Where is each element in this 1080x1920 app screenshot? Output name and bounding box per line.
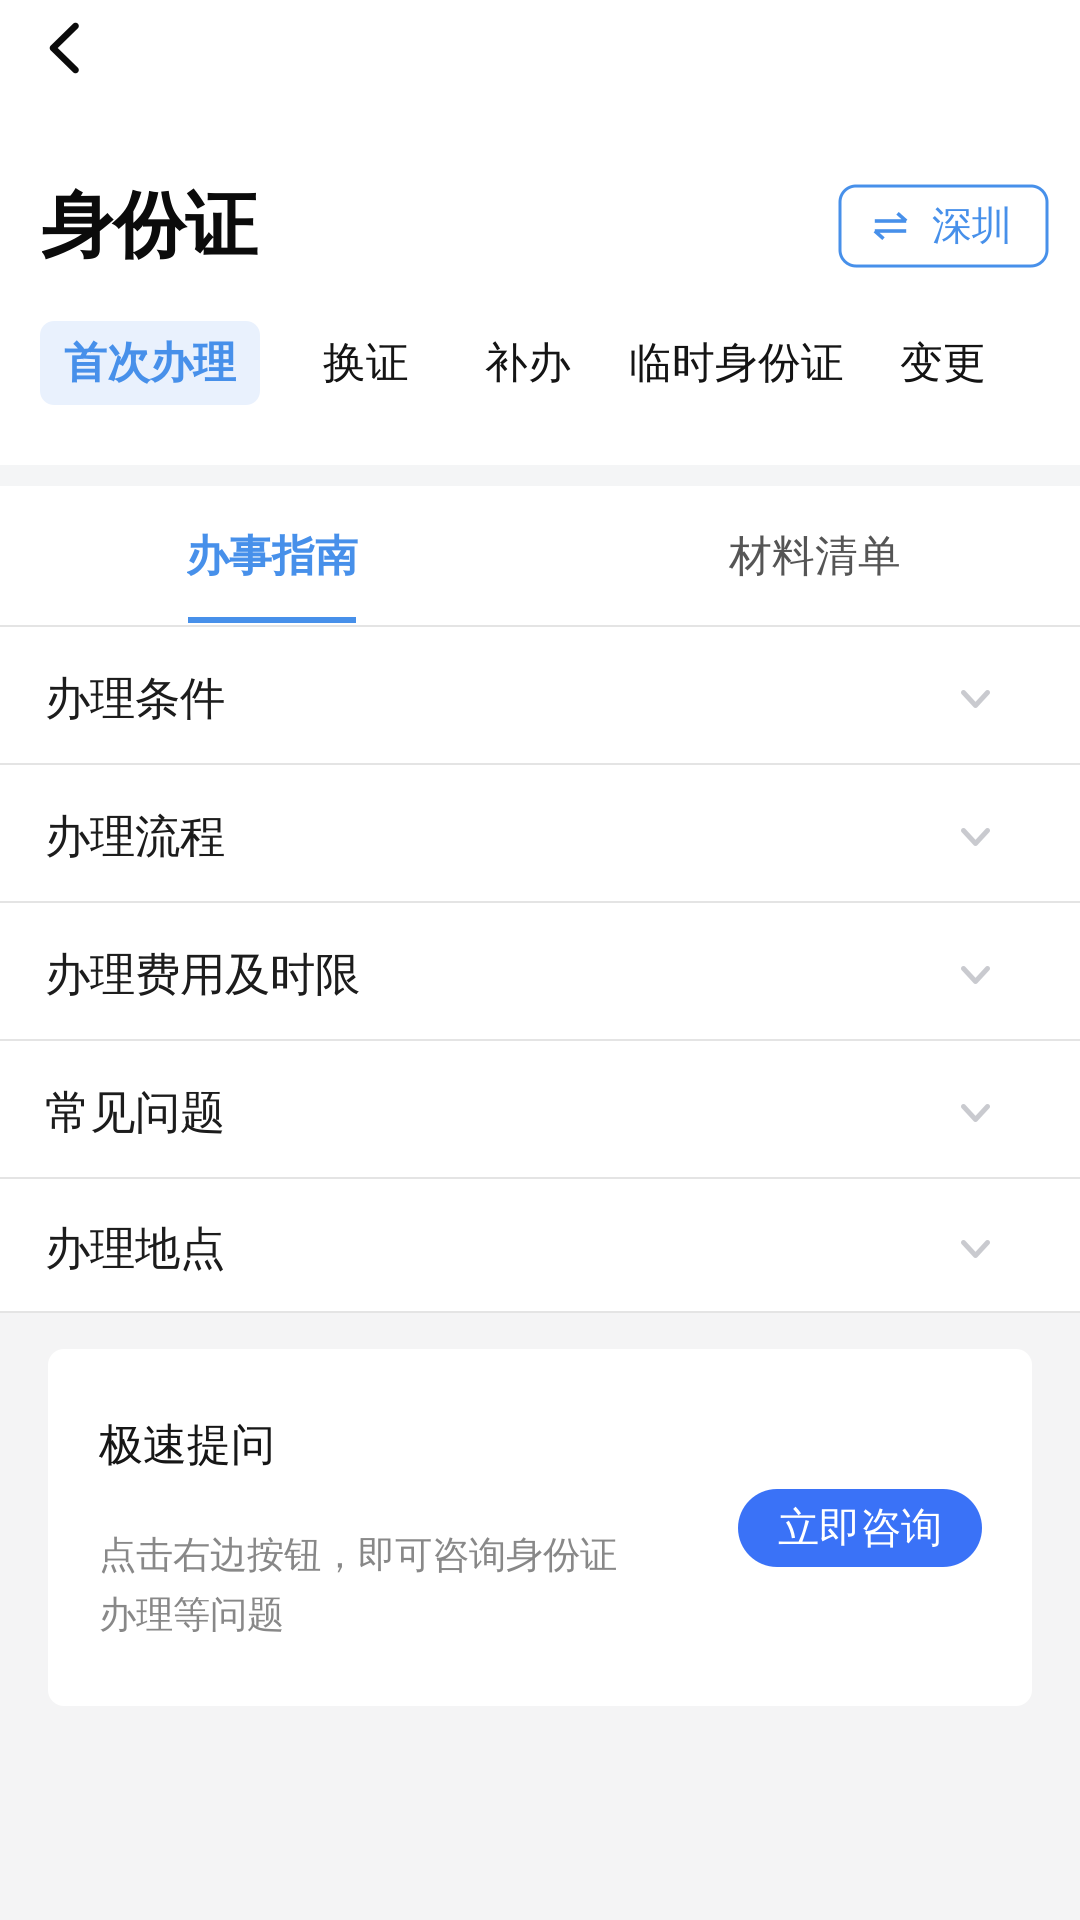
button[interactable]: 换证	[323, 321, 409, 405]
staticText: 办理等问题	[99, 1592, 284, 1638]
button[interactable]: 首次办理	[40, 321, 260, 405]
staticText: 常见问题	[45, 1085, 225, 1141]
button[interactable]: 常见问题	[0, 1041, 1080, 1179]
staticText: 办理流程	[45, 809, 225, 865]
staticText: 首次办理	[64, 337, 236, 389]
staticText: 办事指南	[186, 530, 358, 582]
staticText: 点击右边按钮，即可咨询身份证	[99, 1532, 617, 1578]
button[interactable]: 补办	[485, 321, 571, 405]
button[interactable]: 办理地点	[0, 1179, 1080, 1313]
staticText: 办理费用及时限	[45, 947, 360, 1003]
staticText: 补办	[485, 337, 571, 389]
button[interactable]: 变更	[900, 321, 986, 405]
staticText: 变更	[900, 337, 986, 389]
staticText: 立即咨询	[778, 1503, 942, 1553]
button[interactable]: 办理费用及时限	[0, 903, 1080, 1041]
staticText: 深圳	[932, 201, 1012, 250]
staticText: 临时身份证	[629, 337, 844, 389]
staticText: 办理地点	[45, 1221, 225, 1277]
button[interactable]: 立即咨询	[738, 1489, 982, 1567]
button[interactable]: 办事指南	[0, 486, 540, 625]
staticText: 极速提问	[99, 1418, 275, 1472]
button[interactable]: 材料清单	[540, 486, 1080, 625]
staticText: 办理条件	[45, 671, 225, 727]
button[interactable]: Back	[22, 0, 106, 96]
staticText: 换证	[323, 337, 409, 389]
button[interactable]: 深圳	[840, 186, 1047, 266]
button[interactable]: 办理条件	[0, 627, 1080, 765]
button[interactable]: 临时身份证	[629, 321, 844, 405]
staticText: 身份证	[41, 182, 257, 270]
staticText: 材料清单	[729, 530, 901, 582]
button[interactable]: 办理流程	[0, 765, 1080, 903]
